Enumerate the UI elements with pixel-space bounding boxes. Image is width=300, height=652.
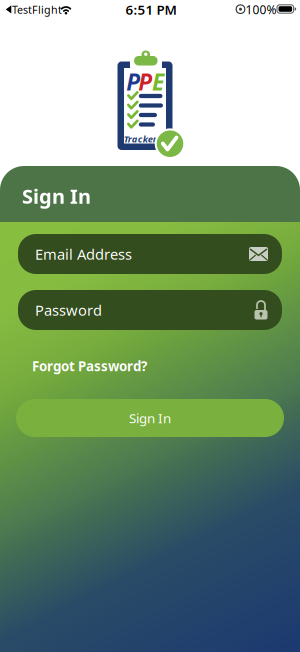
button[interactable]: Password [18,290,282,330]
staticText: P [138,67,152,97]
staticText: Tracker [124,133,157,145]
button[interactable]: Sign In [16,399,284,437]
staticText: Sign In [22,183,91,209]
staticText: Email Address [35,244,132,264]
staticText: 100% [245,1,276,17]
staticText: E [152,67,164,97]
staticText: Forgot Password? [32,357,147,375]
staticText: P [126,67,140,97]
button[interactable]: Forgot Password? [32,357,147,375]
button[interactable]: Email Address [18,234,282,274]
staticText: Password [35,300,102,320]
staticText: 6:51 PM [125,1,176,18]
staticText: TestFlight [12,2,62,17]
staticText: Sign In [129,409,171,427]
